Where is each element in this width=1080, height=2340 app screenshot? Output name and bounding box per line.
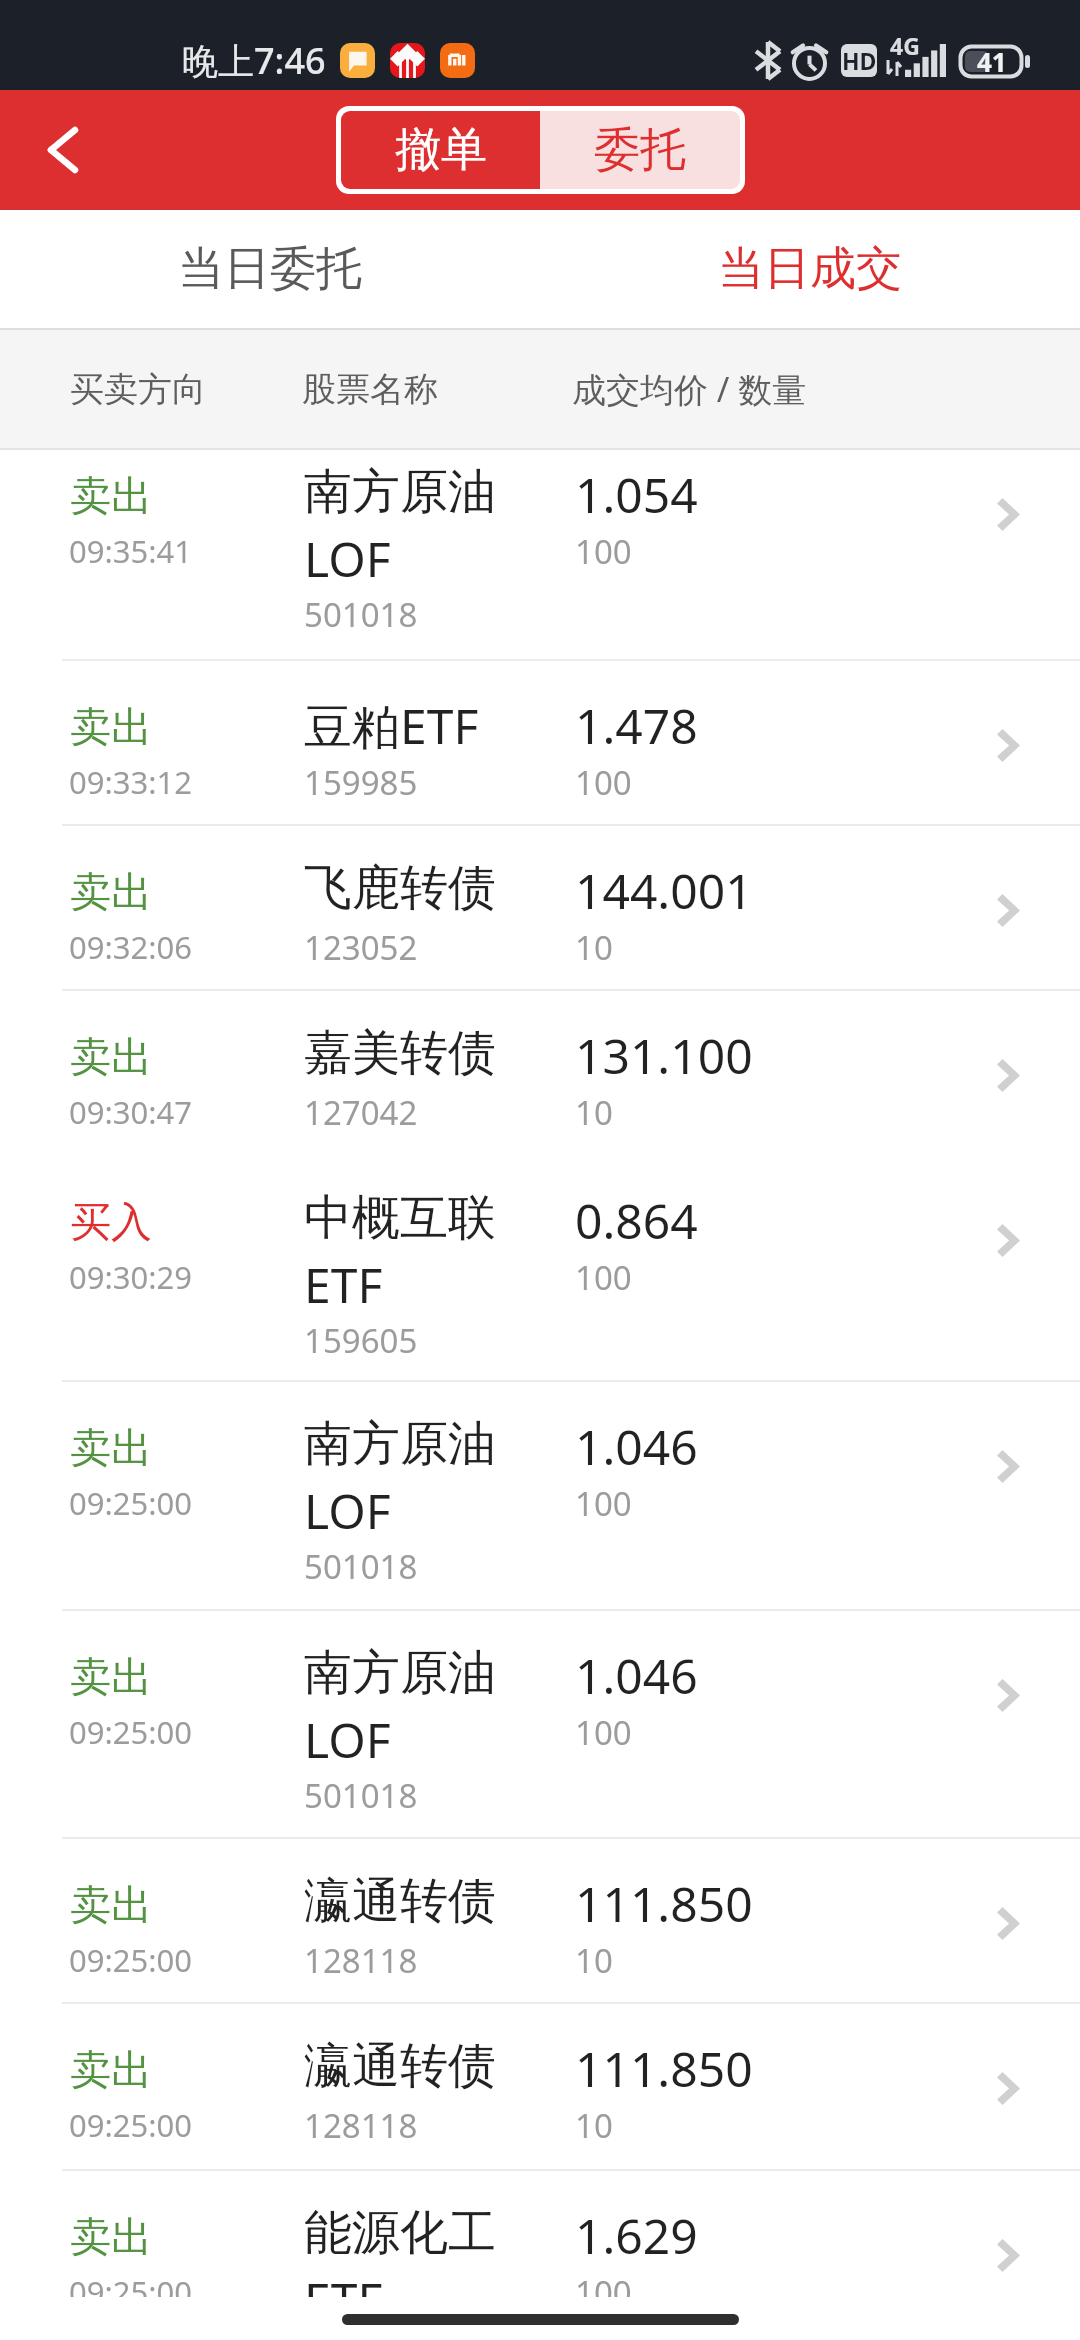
- button[interactable]: 卖出: [0, 991, 1080, 1156]
- staticText: 能源化工 ETF: [304, 2203, 496, 2297]
- staticText: 1.478: [575, 693, 698, 758]
- button[interactable]: 卖出: [0, 1611, 1080, 1839]
- staticText: 09:30:47: [69, 1091, 193, 1133]
- staticText: 10: [575, 925, 613, 970]
- staticText: 当日委托: [178, 240, 362, 298]
- staticText: 瀛通转债: [304, 1871, 496, 1931]
- staticText: 09:25:00: [69, 1711, 193, 1753]
- staticText: 卖出: [70, 867, 152, 919]
- staticText: 09:32:06: [69, 926, 193, 968]
- button[interactable]: 当日成交: [540, 210, 1080, 328]
- staticText: 南方原油 LOF: [304, 1414, 496, 1543]
- button[interactable]: 卖出: [0, 661, 1080, 826]
- staticText: 127042: [304, 1090, 418, 1135]
- staticText: HD: [842, 45, 877, 76]
- staticText: 嘉美转债: [304, 1023, 496, 1083]
- staticText: 09:25:00: [69, 1482, 193, 1524]
- staticText: 501018: [304, 592, 418, 637]
- staticText: 中概互联 ETF: [304, 1188, 496, 1317]
- staticText: 当日成交: [718, 240, 902, 298]
- staticText: 10: [575, 1938, 613, 1983]
- staticText: 501018: [304, 1544, 418, 1589]
- staticText: 144.001: [575, 858, 753, 923]
- staticText: 飞鹿转债: [304, 858, 496, 918]
- staticText: 1.046: [575, 1643, 698, 1708]
- staticText: 撤单: [395, 121, 487, 179]
- staticText: 09:25:00: [69, 2271, 193, 2297]
- staticText: 卖出: [70, 471, 152, 523]
- button[interactable]: 卖出: [0, 1839, 1080, 2004]
- staticText: 111.850: [575, 2036, 753, 2101]
- staticText: 100: [575, 2270, 632, 2297]
- staticText: 10: [575, 2103, 613, 2148]
- staticText: 卖出: [70, 1032, 152, 1084]
- staticText: 159985: [304, 760, 418, 805]
- button[interactable]: 卖出: [0, 450, 1080, 661]
- button[interactable]: 卖出: [0, 826, 1080, 991]
- button[interactable]: 卖出: [0, 2004, 1080, 2171]
- staticText: 南方原油 LOF: [304, 1643, 496, 1772]
- button[interactable]: 当日委托: [0, 210, 540, 328]
- staticText: 123052: [304, 925, 418, 970]
- staticText: 卖出: [70, 2045, 152, 2097]
- staticText: 128118: [304, 2103, 418, 2148]
- staticText: 股票名称: [302, 368, 438, 411]
- button[interactable]: 卖出: [0, 1382, 1080, 1611]
- staticText: 0.864: [575, 1188, 698, 1253]
- staticText: 09:33:12: [69, 761, 193, 803]
- staticText: 1.046: [575, 1414, 698, 1479]
- staticText: 4G: [890, 30, 920, 61]
- staticText: 买入: [70, 1197, 152, 1249]
- button[interactable]: 撤单: [341, 111, 540, 189]
- staticText: 131.100: [575, 1023, 753, 1088]
- staticText: 卖出: [70, 702, 152, 754]
- staticText: 159605: [304, 1318, 418, 1363]
- staticText: 111.850: [575, 1871, 753, 1936]
- staticText: 豆粕ETF: [304, 693, 479, 759]
- staticText: 卖出: [70, 1880, 152, 1932]
- staticText: 41: [977, 44, 1007, 79]
- staticText: 10: [575, 1090, 613, 1135]
- staticText: 09:30:29: [69, 1256, 193, 1298]
- button[interactable]: 买入: [0, 1156, 1080, 1382]
- staticText: 卖出: [70, 1652, 152, 1704]
- staticText: 09:25:00: [69, 1939, 193, 1981]
- staticText: 100: [575, 760, 632, 805]
- button[interactable]: Back: [0, 90, 126, 210]
- staticText: 买卖方向: [70, 368, 206, 411]
- staticText: 委托: [594, 121, 686, 179]
- staticText: 南方原油 LOF: [304, 462, 496, 591]
- button[interactable]: 卖出: [0, 2171, 1080, 2297]
- staticText: 128118: [304, 1938, 418, 1983]
- staticText: 1.629: [575, 2203, 698, 2268]
- staticText: 晚上7:46: [182, 36, 326, 85]
- staticText: 100: [575, 1710, 632, 1755]
- staticText: 100: [575, 1481, 632, 1526]
- staticText: 卖出: [70, 1423, 152, 1475]
- staticText: 1.054: [575, 462, 698, 527]
- staticText: 卖出: [70, 2212, 152, 2264]
- staticText: 09:25:00: [69, 2104, 193, 2146]
- button[interactable]: 委托: [540, 111, 740, 189]
- staticText: 成交均价 / 数量: [572, 366, 807, 412]
- staticText: 100: [575, 1255, 632, 1300]
- staticText: 501018: [304, 1773, 418, 1818]
- staticText: 100: [575, 529, 632, 574]
- staticText: 瀛通转债: [304, 2036, 496, 2096]
- staticText: 09:35:41: [69, 530, 193, 572]
